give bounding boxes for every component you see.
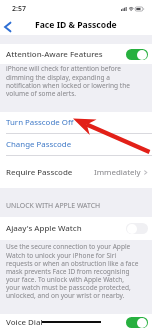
staticText: Turn Passcode Off bbox=[6, 117, 74, 128]
staticText: Require Passcode bbox=[6, 167, 73, 178]
button[interactable]: Change Passcode bbox=[0, 134, 152, 155]
staticText: Face ID & Passcode bbox=[35, 19, 117, 31]
button[interactable]: Voice Dial bbox=[0, 314, 152, 331]
button[interactable]: Require Passcode bbox=[0, 156, 152, 188]
staticText: UNLOCK WITH APPLE WATCH bbox=[6, 201, 101, 210]
staticText: Immediately bbox=[94, 167, 141, 178]
button[interactable]: Back bbox=[2, 21, 14, 33]
staticText: Attention-Aware Features bbox=[6, 49, 103, 60]
button[interactable]: On bbox=[126, 49, 148, 60]
button[interactable]: Attention-Aware Features bbox=[0, 44, 152, 64]
button[interactable]: Turn Passcode Off bbox=[0, 112, 152, 133]
staticText: Ajaay's Apple Watch bbox=[6, 223, 82, 234]
staticText: Change Passcode bbox=[6, 139, 72, 150]
button[interactable]: On bbox=[126, 317, 148, 328]
staticText: Use the secure connection to your Apple … bbox=[6, 242, 139, 299]
staticText: Voice Dial bbox=[6, 317, 43, 328]
button[interactable]: Off bbox=[126, 223, 148, 234]
staticText: iPhone will check for attention before d… bbox=[6, 64, 130, 98]
staticText: 2:57 bbox=[12, 4, 26, 14]
button[interactable]: Ajaay's Apple Watch bbox=[0, 217, 152, 240]
